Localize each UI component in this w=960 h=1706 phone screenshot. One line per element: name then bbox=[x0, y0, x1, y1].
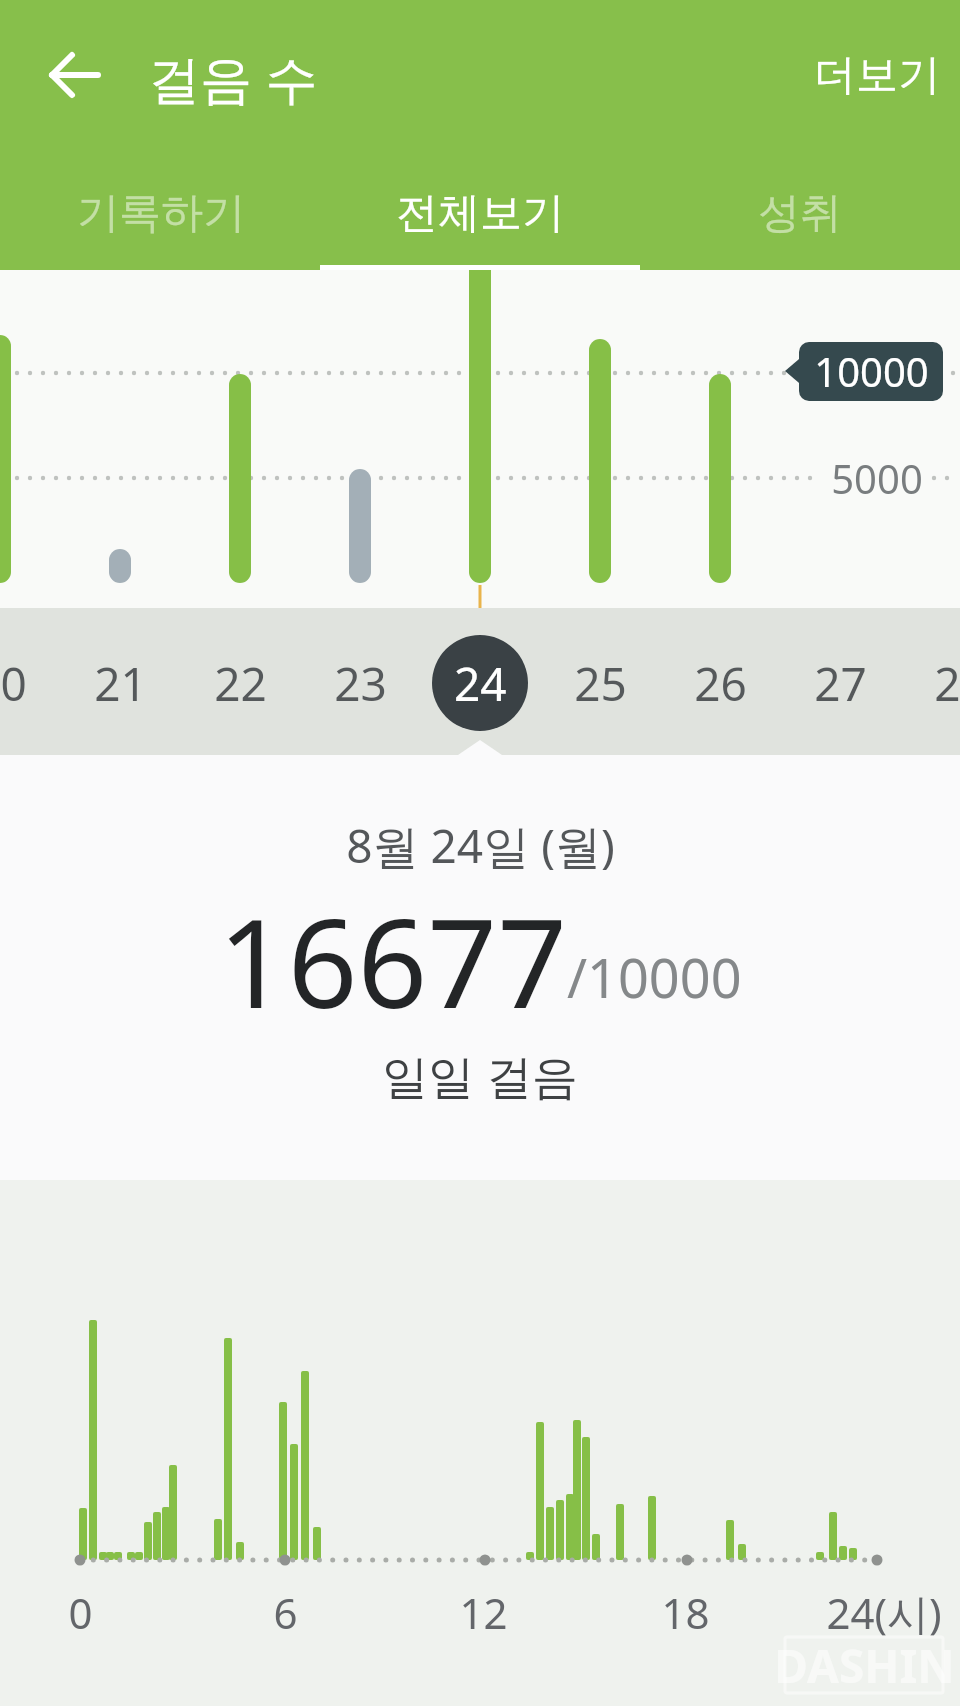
staticText: 6 bbox=[273, 1584, 298, 1641]
staticText: 24 bbox=[454, 652, 507, 715]
button[interactable]: 27 bbox=[785, 628, 895, 738]
button[interactable]: 20 bbox=[0, 628, 55, 738]
staticText: 전체보기 bbox=[396, 187, 564, 240]
button[interactable] bbox=[40, 40, 110, 110]
staticText: 성취 bbox=[758, 187, 842, 240]
staticText: 16677 bbox=[218, 878, 567, 1028]
button[interactable]: 성취 bbox=[640, 168, 960, 258]
button[interactable]: 22 bbox=[185, 628, 295, 738]
button[interactable]: 기록하기 bbox=[1, 168, 321, 258]
button[interactable]: 23 bbox=[305, 628, 415, 738]
staticText: 27 bbox=[814, 652, 867, 715]
button[interactable]: 24 bbox=[432, 635, 528, 731]
staticText: 24(시) bbox=[826, 1584, 942, 1641]
button[interactable]: 28 bbox=[905, 628, 960, 738]
staticText: DASHIN bbox=[774, 1634, 955, 1697]
staticText: 20 bbox=[0, 652, 27, 715]
staticText: 21 bbox=[94, 652, 147, 715]
staticText: 10000 bbox=[814, 344, 929, 398]
button[interactable]: 25 bbox=[545, 628, 655, 738]
staticText: 22 bbox=[214, 652, 267, 715]
staticText: 일일 걸음 bbox=[382, 1044, 578, 1107]
staticText: 25 bbox=[574, 652, 627, 715]
staticText: 더보기 bbox=[814, 49, 940, 102]
staticText: 0 bbox=[68, 1584, 93, 1641]
staticText: 기록하기 bbox=[77, 187, 245, 240]
staticText: 5000 bbox=[831, 451, 923, 505]
staticText: 28 bbox=[934, 652, 960, 715]
button[interactable]: 21 bbox=[65, 628, 175, 738]
staticText: 걸음 수 bbox=[148, 42, 318, 108]
staticText: 18 bbox=[661, 1584, 710, 1641]
button[interactable]: 더보기 bbox=[767, 30, 960, 120]
staticText: 26 bbox=[694, 652, 747, 715]
button[interactable]: 전체보기 bbox=[320, 168, 640, 258]
staticText: 12 bbox=[459, 1584, 508, 1641]
staticText: 8월 24일 (월) bbox=[346, 814, 615, 877]
button[interactable]: 26 bbox=[665, 628, 775, 738]
staticText: /10000 bbox=[567, 940, 742, 1014]
staticText: 23 bbox=[334, 652, 387, 715]
